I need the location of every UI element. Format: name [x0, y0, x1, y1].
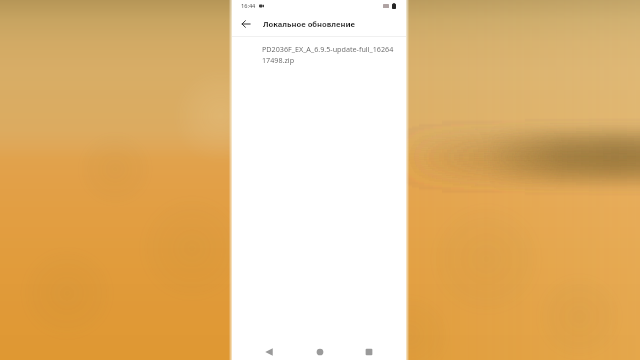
staticText: 16:44 — [241, 2, 256, 10]
button[interactable]: PD2036F_EX_A_6.9.5-update-full_16264 174… — [232, 37, 406, 69]
button[interactable]: Recents — [360, 343, 377, 360]
button[interactable]: Home — [311, 343, 328, 360]
staticText: PD2036F_EX_A_6.9.5-update-full_16264 174… — [262, 44, 394, 65]
staticText: Локальное обновление — [263, 19, 356, 29]
button[interactable]: Back — [237, 15, 255, 33]
button[interactable]: Back — [260, 343, 277, 360]
